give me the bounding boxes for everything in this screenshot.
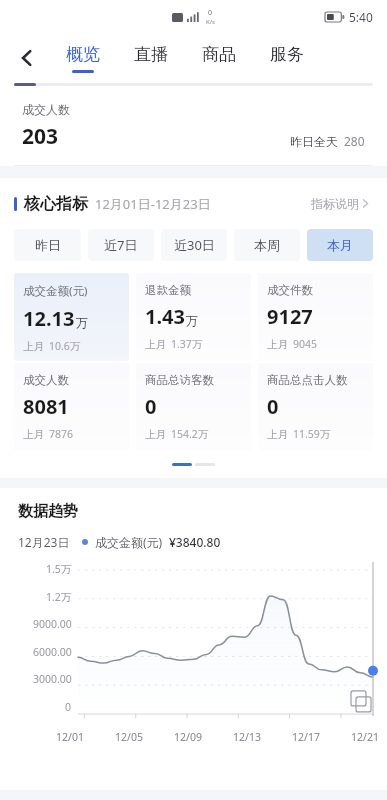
staticText: 成交人数 (23, 373, 69, 387)
button[interactable]: 退款金额 (136, 273, 251, 361)
staticText: 直播 (134, 44, 168, 65)
button[interactable]: 概览 (62, 42, 104, 75)
staticText: 昨日 (35, 237, 61, 253)
button[interactable]: 成交金额(元) (14, 273, 129, 361)
staticText: 万 (76, 315, 88, 330)
staticText: ¥3840.80 (169, 534, 221, 550)
button[interactable]: 成交件数 (258, 273, 373, 361)
staticText: 万 (186, 313, 198, 328)
staticText: 1.2万 (46, 590, 72, 604)
staticText: 1.5万 (46, 562, 72, 576)
staticText: 近30日 (174, 236, 215, 254)
staticText: 9000.00 (33, 617, 72, 631)
staticText: 12月23日 (18, 534, 70, 550)
staticText: 昨日全天 (290, 134, 338, 149)
staticText: 11.59万 (293, 427, 331, 441)
staticText: 8081 (23, 393, 69, 420)
button[interactable]: 本周 (234, 229, 300, 261)
button[interactable]: 近7日 (88, 229, 154, 261)
staticText: 本周 (254, 237, 280, 253)
staticText: 核心指标 (24, 194, 88, 214)
staticText: 203 (22, 122, 59, 151)
button[interactable]: 商品总访客数 (136, 363, 251, 451)
staticText: 成交人数 (22, 102, 70, 117)
staticText: 7876 (49, 427, 74, 441)
button[interactable]: 服务 (266, 42, 308, 75)
staticText: 0 (65, 700, 72, 714)
staticText: 6000.00 (33, 645, 72, 659)
staticText: 12/05 (115, 730, 143, 744)
staticText: 上月 (267, 338, 288, 351)
staticText: 概览 (66, 44, 100, 65)
button[interactable]: 商品 (198, 42, 240, 75)
staticText: 12/13 (233, 730, 261, 744)
button[interactable]: 本月 (307, 229, 373, 261)
staticText: 12/17 (292, 730, 320, 744)
button[interactable]: Back (6, 37, 48, 79)
staticText: K/s (206, 18, 215, 26)
staticText: 1.37万 (171, 337, 203, 351)
button[interactable]: 成交人数 (0, 87, 387, 165)
staticText: 10.6万 (49, 339, 81, 353)
staticText: 本月 (327, 237, 353, 253)
staticText: 商品总点击人数 (267, 373, 348, 387)
staticText: 上月 (267, 428, 288, 441)
button[interactable]: 商品总点击人数 (258, 363, 373, 451)
staticText: 上月 (23, 340, 44, 353)
staticText: 12月01日-12月23日 (95, 195, 211, 213)
staticText: 3000.00 (33, 672, 72, 686)
staticText: 154.2万 (171, 427, 209, 441)
staticText: 9127 (267, 303, 313, 330)
staticText: 280 (344, 133, 365, 149)
staticText: 9045 (293, 337, 318, 351)
staticText: 12.13 (23, 305, 75, 332)
button[interactable]: 近30日 (161, 229, 227, 261)
staticText: 退款金额 (145, 283, 191, 297)
staticText: 上月 (23, 428, 44, 441)
button[interactable]: 成交人数 (14, 363, 129, 451)
staticText: 1.43 (145, 303, 185, 330)
staticText: 服务 (270, 44, 304, 65)
staticText: 数据趋势 (18, 502, 78, 521)
button[interactable]: 直播 (130, 42, 172, 75)
staticText: 12/09 (174, 730, 202, 744)
staticText: 上月 (145, 428, 166, 441)
staticText: 5:40 (349, 9, 373, 25)
staticText: 商品 (202, 44, 236, 65)
staticText: 成交金额(元) (23, 283, 88, 299)
staticText: 0 (145, 393, 157, 420)
staticText: 12/01 (56, 730, 84, 744)
staticText: 0 (267, 393, 279, 420)
staticText: 近7日 (104, 236, 138, 254)
staticText: 12/21 (351, 730, 379, 744)
staticText: 成交金额(元) (95, 534, 163, 550)
button[interactable]: 昨日 (14, 229, 81, 261)
staticText: 商品总访客数 (145, 373, 214, 387)
staticText: 0 (208, 8, 213, 18)
staticText: 上月 (145, 338, 166, 351)
staticText: 成交件数 (267, 283, 313, 297)
button[interactable]: 指标说明 (307, 192, 373, 215)
staticText: 指标说明 (311, 196, 359, 211)
